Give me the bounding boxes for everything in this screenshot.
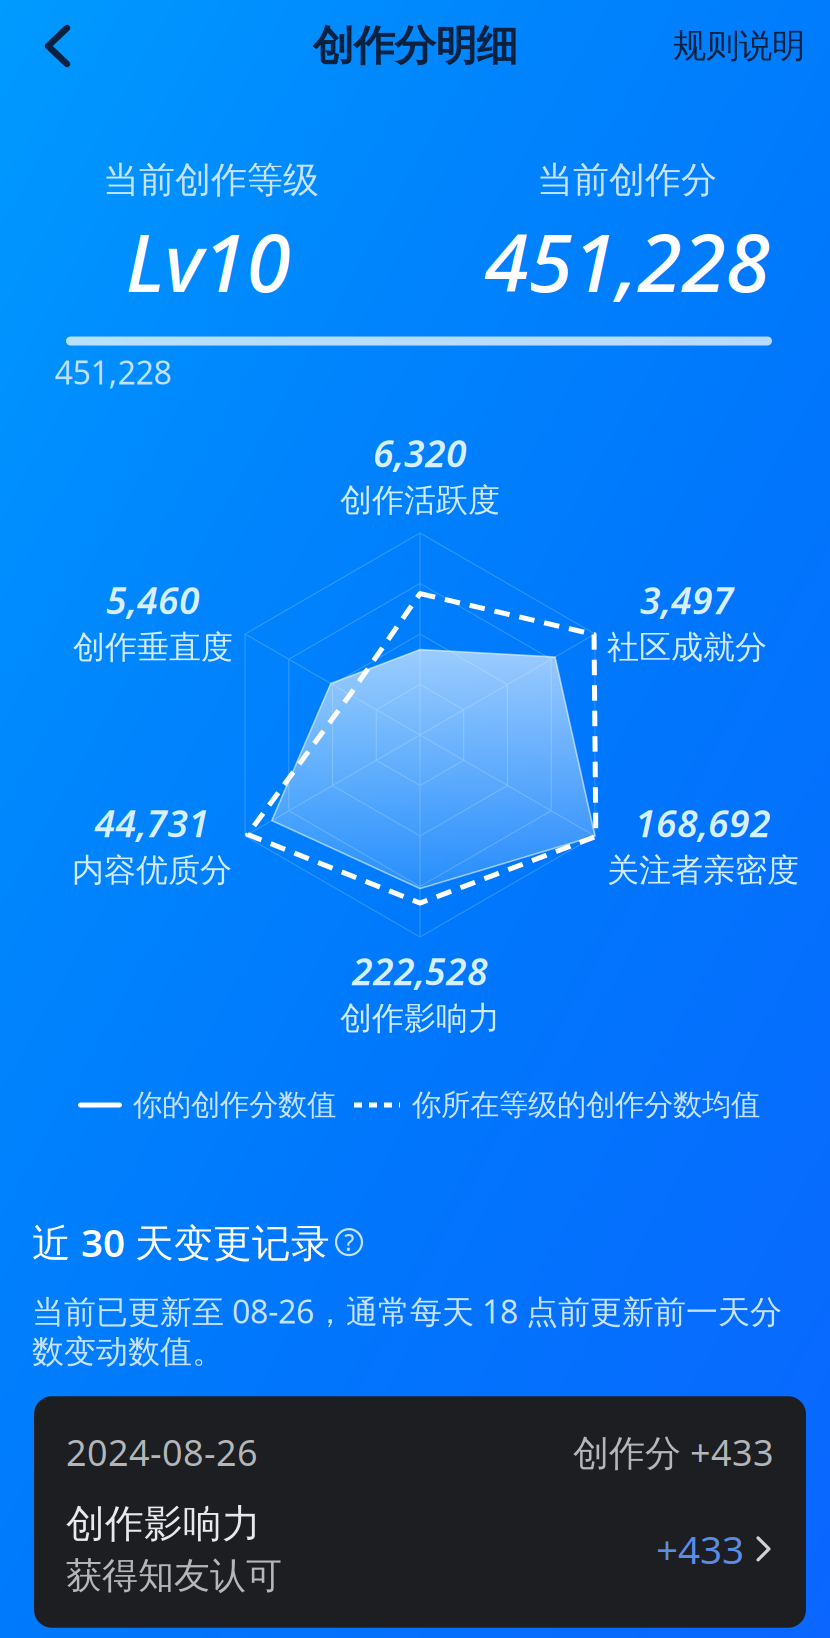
staticText: 当前已更新至 08-26，通常每天 18 点前更新前一天分数变动数值。 — [32, 1290, 782, 1372]
button[interactable]: 2024-08-26 — [34, 1396, 806, 1628]
staticText: 2024-08-26 — [66, 1428, 258, 1476]
staticText: 你的创作分数值 — [133, 1087, 336, 1123]
staticText: 关注者亲密度 — [607, 851, 799, 890]
staticText: 创作活跃度 — [340, 481, 500, 520]
staticText: 创作垂直度 — [73, 628, 233, 667]
staticText: 你所在等级的创作分数均值 — [412, 1087, 760, 1123]
button[interactable]: 规则说明 — [663, 13, 815, 78]
staticText: 创作影响力 — [340, 999, 500, 1038]
staticText: 3,497 — [640, 575, 734, 625]
staticText: 创作分 +433 — [573, 1428, 774, 1476]
staticText: 451,228 — [484, 208, 769, 314]
staticText: 168,692 — [635, 798, 771, 848]
staticText: 6,320 — [373, 428, 467, 478]
staticText: 规则说明 — [673, 25, 805, 66]
staticText: 当前创作等级 — [103, 158, 319, 202]
staticText: Lv10 — [125, 208, 290, 314]
staticText: 获得知友认可 — [66, 1553, 282, 1598]
staticText: +433 — [656, 1523, 744, 1574]
staticText: 5,460 — [106, 575, 200, 625]
staticText: 创作影响力 — [66, 1500, 261, 1547]
staticText: ? — [344, 1227, 354, 1257]
staticText: 44,731 — [94, 798, 209, 848]
staticText: 社区成就分 — [607, 628, 767, 667]
staticText: 222,528 — [352, 946, 488, 996]
staticText: 近 30 天变更记录 — [32, 1216, 330, 1268]
staticText: 创作分明细 — [312, 21, 517, 71]
staticText: 内容优质分 — [72, 851, 232, 890]
staticText: 451,228 — [54, 351, 171, 393]
staticText: 当前创作分 — [537, 158, 717, 202]
button[interactable]: Back — [18, 5, 98, 87]
